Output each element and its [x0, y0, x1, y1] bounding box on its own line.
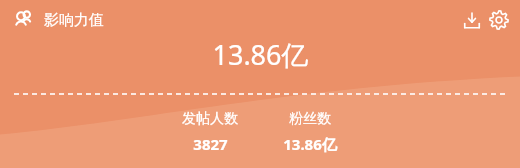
button[interactable]: Download — [461, 9, 483, 31]
staticText: 3827 — [193, 134, 228, 154]
staticText: 13.86亿 — [283, 134, 337, 154]
staticText: 影响力值 — [44, 11, 104, 30]
staticText: 粉丝数 — [289, 110, 331, 128]
button[interactable]: 粉丝数 — [269, 110, 351, 154]
button[interactable]: 发帖人数 — [169, 110, 251, 154]
staticText: 13.86亿 — [212, 36, 309, 73]
staticText: 发帖人数 — [182, 110, 238, 128]
button[interactable]: Group — [12, 8, 36, 32]
button[interactable]: Settings — [488, 9, 510, 31]
